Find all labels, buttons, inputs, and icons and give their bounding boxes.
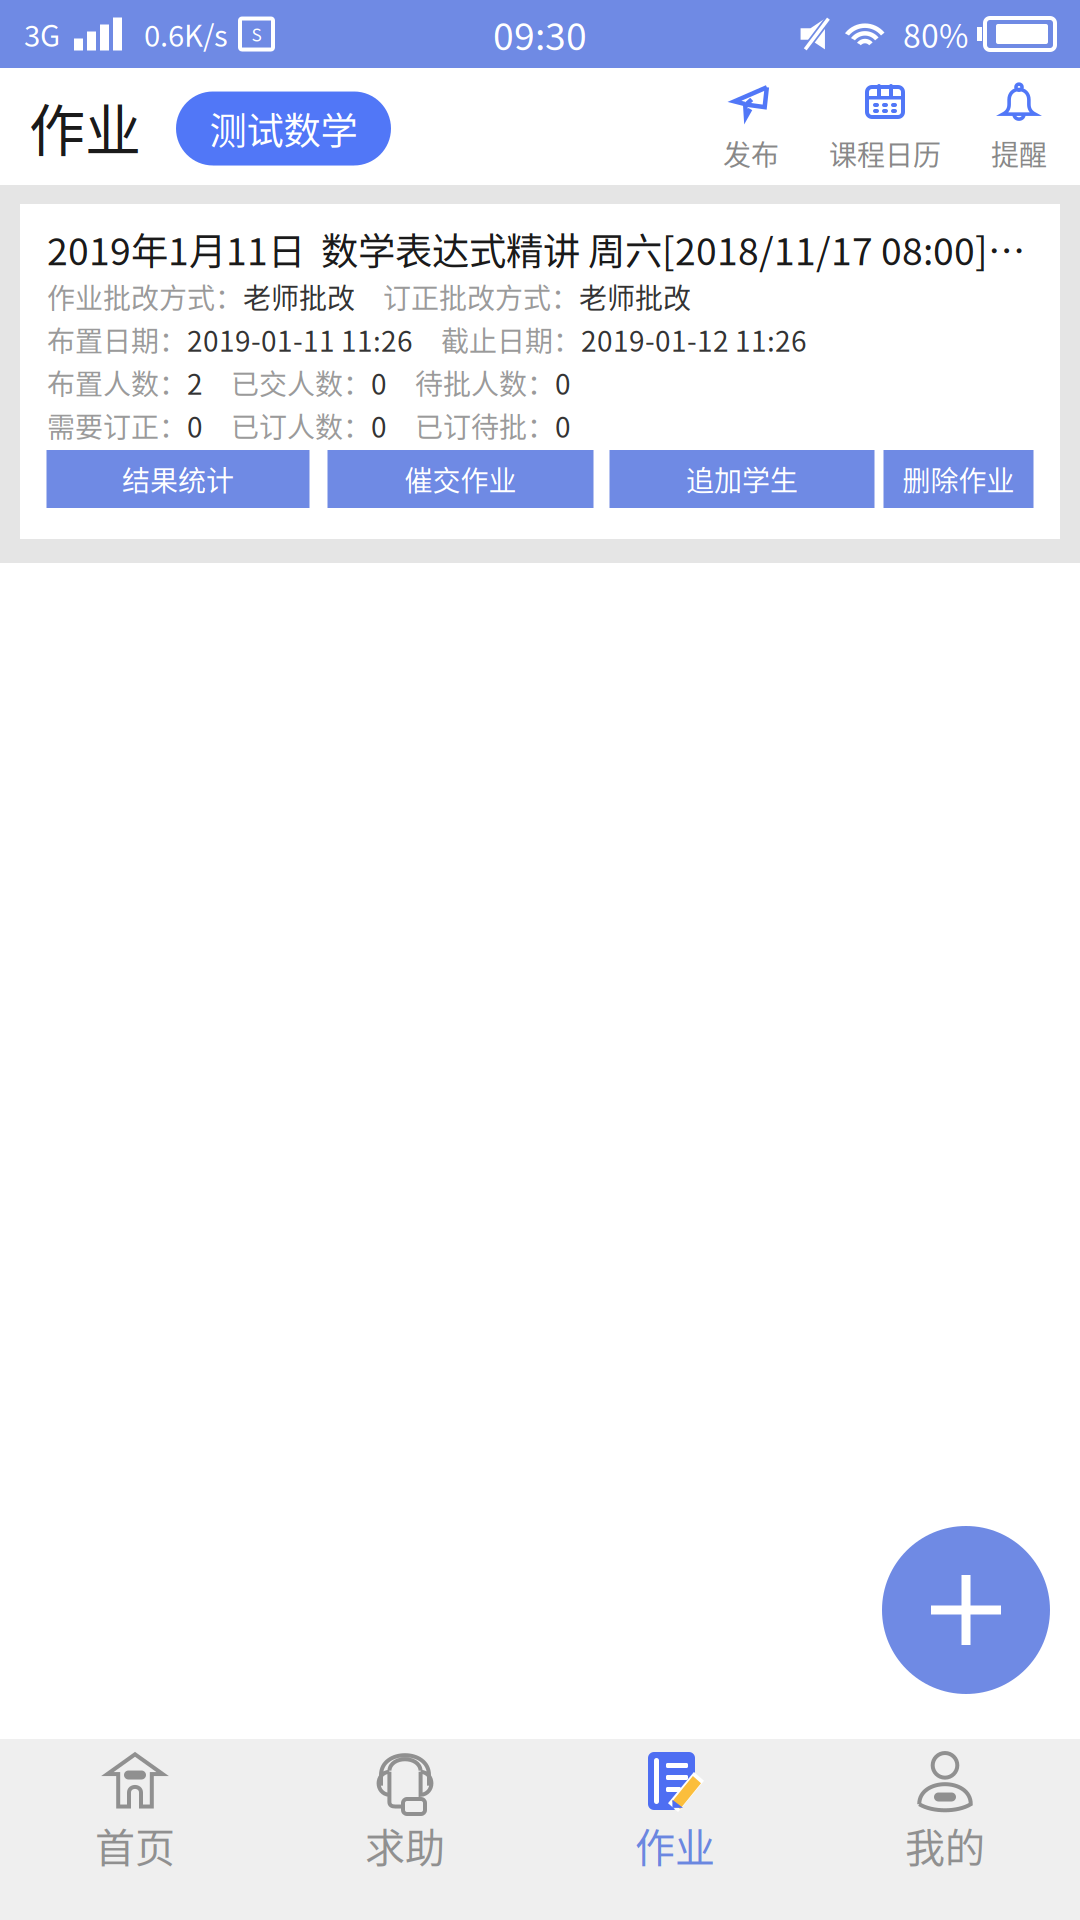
- button[interactable]: 提醒: [952, 68, 1080, 185]
- button[interactable]: 课程日历: [818, 68, 952, 185]
- staticText: 我的: [905, 1816, 985, 1874]
- staticText: 已订人数：: [203, 405, 371, 446]
- staticText: 首页: [95, 1816, 175, 1874]
- staticText: 订正批改方式：: [355, 276, 579, 317]
- staticText: 80%: [903, 11, 968, 57]
- staticText: 2019-01-12 11:26: [581, 319, 807, 360]
- staticText: 2019-01-11 11:26: [187, 319, 413, 360]
- button[interactable]: 结果统计: [46, 450, 309, 508]
- staticText: 催交作业: [404, 459, 516, 499]
- staticText: 0: [555, 405, 571, 446]
- staticText: 已订待批：: [387, 405, 555, 446]
- staticText: 发布: [723, 133, 779, 173]
- button[interactable]: 求助: [270, 1739, 540, 1920]
- staticText: 老师批改: [243, 276, 355, 317]
- staticText: 已交人数：: [203, 362, 371, 403]
- staticText: 追加学生: [686, 459, 798, 499]
- staticText: 作业: [635, 1816, 715, 1874]
- staticText: 0: [555, 362, 571, 403]
- staticText: 老师批改: [579, 276, 691, 317]
- staticText: 结果统计: [122, 459, 234, 499]
- staticText: 删除作业: [902, 459, 1014, 499]
- button[interactable]: 发布: [684, 68, 818, 185]
- staticText: 0: [371, 362, 387, 403]
- staticText: 布置人数：: [47, 362, 187, 403]
- staticText: 0: [371, 405, 387, 446]
- button[interactable]: 新建作业: [882, 1526, 1050, 1694]
- staticText: 提醒: [991, 133, 1047, 173]
- staticText: 测试数学: [209, 101, 357, 156]
- staticText: 求助: [365, 1816, 445, 1874]
- staticText: 需要订正：: [47, 405, 187, 446]
- staticText: 作业: [29, 86, 141, 167]
- staticText: 截止日期：: [413, 319, 581, 360]
- button[interactable]: 催交作业: [327, 450, 593, 508]
- staticText: 课程日历: [829, 133, 941, 173]
- staticText: 布置日期：: [47, 319, 187, 360]
- staticText: S: [251, 21, 261, 47]
- button[interactable]: 删除作业: [883, 450, 1033, 508]
- staticText: 09:30: [493, 7, 587, 61]
- button[interactable]: 我的: [810, 1739, 1080, 1920]
- staticText: 待批人数：: [387, 362, 555, 403]
- staticText: 作业批改方式：: [47, 276, 243, 317]
- button[interactable]: 测试数学: [176, 89, 391, 163]
- button[interactable]: 作业: [540, 1739, 810, 1920]
- button[interactable]: 追加学生: [609, 450, 874, 508]
- staticText: 2: [187, 362, 203, 403]
- staticText: 2019年1月11日 数学表达式精讲 周六[2018/11/17 08:00]…: [47, 222, 1025, 276]
- button[interactable]: 首页: [0, 1739, 270, 1920]
- staticText: 0: [187, 405, 203, 446]
- staticText: 3G: [24, 13, 60, 55]
- staticText: 0.6K/s: [144, 13, 228, 55]
